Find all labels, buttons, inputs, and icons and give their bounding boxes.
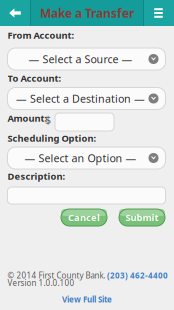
button[interactable]: (203) 462-4400 xyxy=(107,270,168,281)
button[interactable]: Menu xyxy=(143,0,174,26)
button[interactable]: Back xyxy=(0,0,30,26)
staticText: © 2014 First County Bank. xyxy=(7,270,105,281)
button[interactable]: — Select a Source — xyxy=(7,48,165,70)
staticText: To Account: xyxy=(7,72,61,84)
staticText: Scheduling Option: xyxy=(7,132,96,144)
staticText: Description: xyxy=(7,170,65,182)
staticText: — Select a Destination — xyxy=(16,91,145,106)
button[interactable]: Submit xyxy=(119,209,165,226)
staticText: Version 1.0.0.100 xyxy=(7,277,74,288)
staticText: Cancel xyxy=(68,211,100,224)
staticText: Submit xyxy=(125,211,158,224)
staticText: From Account: xyxy=(7,29,74,41)
staticText: View Full Site xyxy=(62,294,112,305)
staticText: — Select an Option — xyxy=(24,151,136,165)
button[interactable]: — Select an Option — xyxy=(7,147,165,169)
staticText: Make a Transfer xyxy=(40,5,134,21)
button[interactable]: Cancel xyxy=(61,209,107,226)
button[interactable]: View Full Site xyxy=(0,294,174,305)
staticText: (203) 462-4400 xyxy=(107,270,168,281)
staticText: $ xyxy=(45,112,51,127)
staticText: Amount: xyxy=(7,112,47,124)
staticText: — Select a Source — xyxy=(28,52,132,66)
button[interactable]: — Select a Destination — xyxy=(7,87,165,109)
